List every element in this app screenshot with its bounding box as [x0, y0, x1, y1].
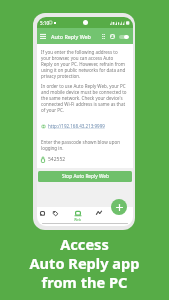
button[interactable]: Add: [111, 199, 127, 215]
staticText: Auto Reply Web: [51, 33, 91, 40]
button[interactable]: Stop Auto Reply Web: [38, 171, 132, 182]
button[interactable]: Stats: [92, 211, 106, 215]
button[interactable]: Web: [71, 211, 85, 222]
button[interactable]: Templates: [108, 31, 117, 42]
button[interactable]: Tags: [48, 211, 62, 216]
staticText: If you enter the following address to yo…: [41, 49, 126, 79]
staticText: Stop Auto Reply Web: [62, 173, 109, 180]
button[interactable]: Toggle Auto Reply: [118, 31, 130, 42]
button[interactable]: Sort: [100, 31, 107, 42]
button[interactable]: Menu: [37, 28, 48, 44]
staticText: In order to use Auto Reply Web, your PC …: [41, 83, 127, 113]
button[interactable]: Chats: [37, 211, 49, 216]
staticText: Enter the passcode shown blow upon loggi…: [41, 139, 120, 151]
staticText: Web: [74, 217, 82, 222]
staticText: http://192.168.43.213:9999: [48, 123, 105, 129]
staticText: Access Auto Reply app from the PC: [0, 234, 169, 292]
staticText: 542552: [48, 156, 66, 163]
staticText: 5:10: [40, 20, 50, 26]
button[interactable]: http://192.168.43.213:9999: [41, 123, 105, 129]
